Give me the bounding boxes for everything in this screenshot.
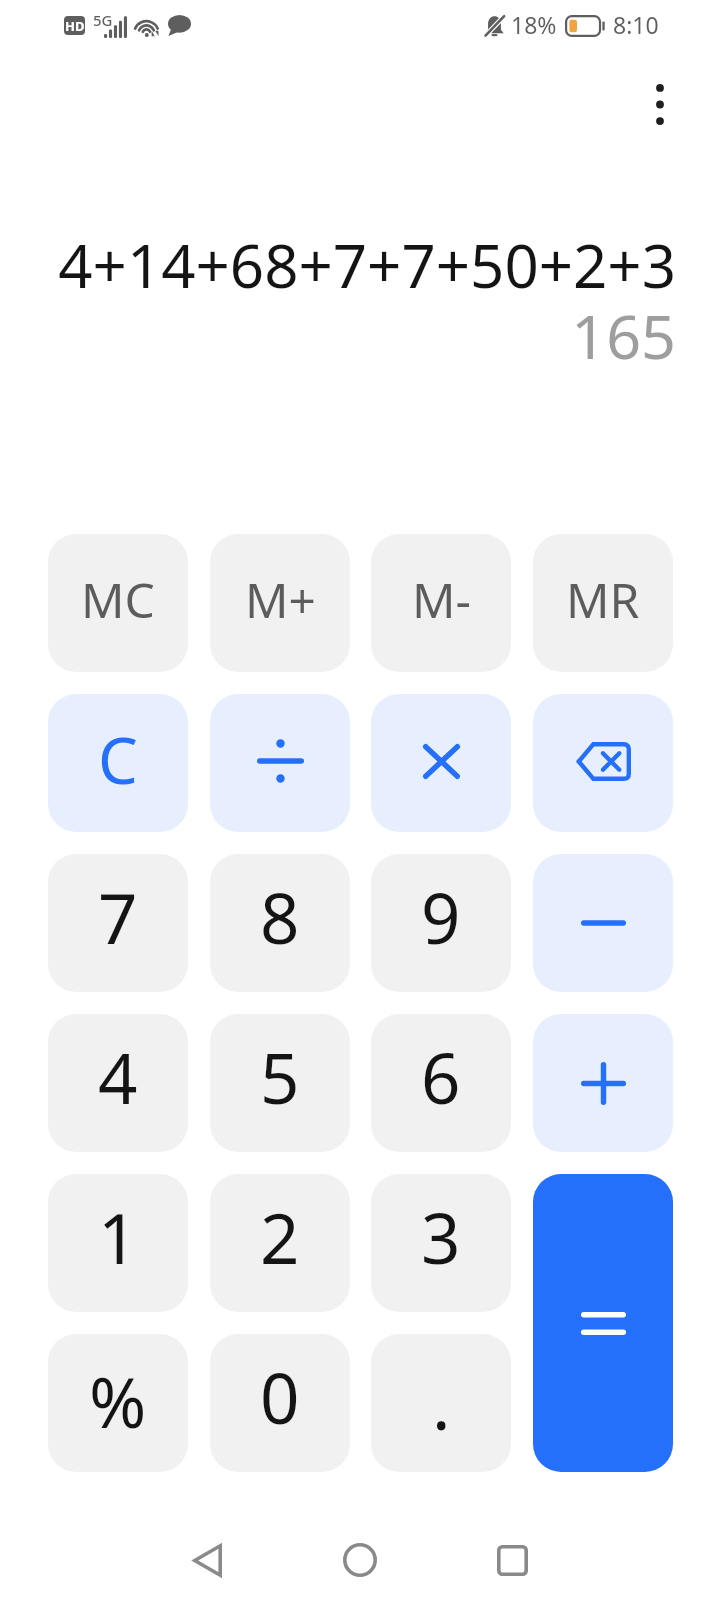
staticText: 5G [93, 10, 113, 30]
staticText: 4+14+68+7+7+50+2+3 [58, 224, 676, 306]
button[interactable]: Home [312, 1520, 408, 1600]
staticText: M+ [245, 567, 316, 632]
button[interactable]: 1 [48, 1174, 188, 1312]
button[interactable]: 3 [371, 1174, 511, 1312]
button[interactable]: 6 [371, 1014, 511, 1152]
staticText: HD [65, 17, 85, 35]
button[interactable]: M- [371, 534, 511, 672]
button[interactable]: Equals [533, 1174, 673, 1472]
staticText: 5 [260, 1030, 300, 1124]
staticText: 4 [98, 1030, 138, 1124]
button[interactable]: 5 [210, 1014, 350, 1152]
staticText: 165 [571, 294, 676, 377]
staticText: MR [566, 567, 640, 632]
button[interactable]: Recents [464, 1520, 560, 1600]
staticText: 9 [421, 870, 461, 964]
button[interactable]: 7 [48, 854, 188, 992]
button[interactable]: Back [159, 1520, 255, 1600]
button[interactable]: M+ [210, 534, 350, 672]
button[interactable]: MR [533, 534, 673, 672]
staticText: 18% [511, 9, 557, 40]
button[interactable]: Minus [533, 854, 673, 992]
button[interactable]: 0 [210, 1334, 350, 1472]
staticText: M- [412, 567, 471, 632]
button[interactable]: % [48, 1334, 188, 1472]
staticText: C [98, 717, 138, 803]
button[interactable]: Plus [533, 1014, 673, 1152]
staticText: 8 [260, 870, 300, 964]
staticText: 3 [421, 1190, 461, 1284]
staticText: % [89, 1354, 147, 1448]
button[interactable]: Divide [210, 694, 350, 832]
staticText: 2 [260, 1190, 300, 1284]
staticText: 8:10 [613, 9, 659, 40]
button[interactable]: Multiply [371, 694, 511, 832]
button[interactable]: 2 [210, 1174, 350, 1312]
button[interactable]: 8 [210, 854, 350, 992]
staticText: 6 [421, 1030, 461, 1124]
staticText: 0 [260, 1350, 300, 1444]
button[interactable]: 4 [48, 1014, 188, 1152]
button[interactable]: MC [48, 534, 188, 672]
staticText: MC [81, 567, 155, 632]
button[interactable]: . [371, 1334, 511, 1472]
staticText: 7 [98, 870, 138, 964]
button[interactable]: C [48, 694, 188, 832]
staticText: 1 [98, 1190, 138, 1284]
button[interactable]: 9 [371, 854, 511, 992]
staticText: . [432, 1356, 451, 1450]
button[interactable]: Backspace [533, 694, 673, 832]
button[interactable]: More options [612, 56, 708, 152]
